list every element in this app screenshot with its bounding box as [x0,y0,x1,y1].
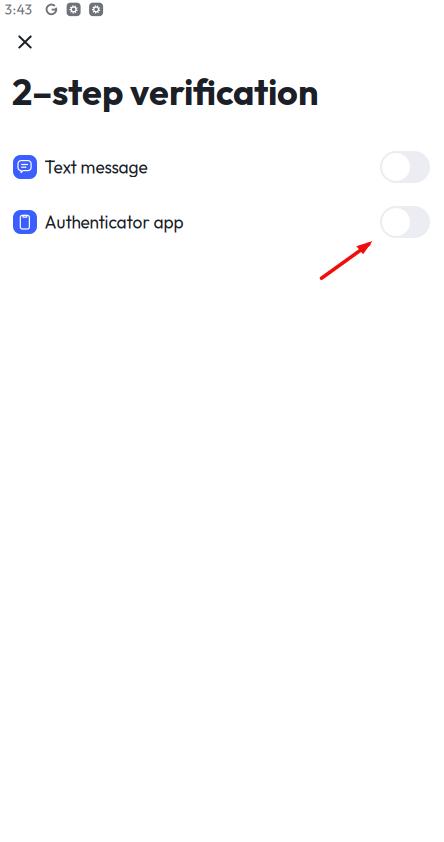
staticText: 3:43 [5,1,33,18]
staticText: Authenticator app [44,211,183,233]
button[interactable]: Authenticator app [0,200,444,244]
button[interactable]: Close [3,23,47,61]
staticText: 2–step verification [12,69,319,114]
staticText: Text message [44,156,147,178]
button[interactable]: Text message [0,145,444,189]
